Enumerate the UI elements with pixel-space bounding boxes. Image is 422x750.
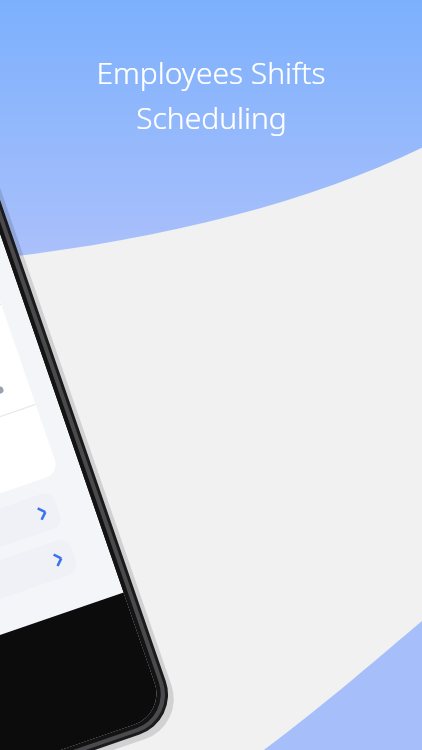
- staticText: Employees Shifts: [96, 52, 326, 93]
- staticText: Scheduling: [136, 97, 287, 138]
- button[interactable]: App preview: [0, 0, 422, 750]
